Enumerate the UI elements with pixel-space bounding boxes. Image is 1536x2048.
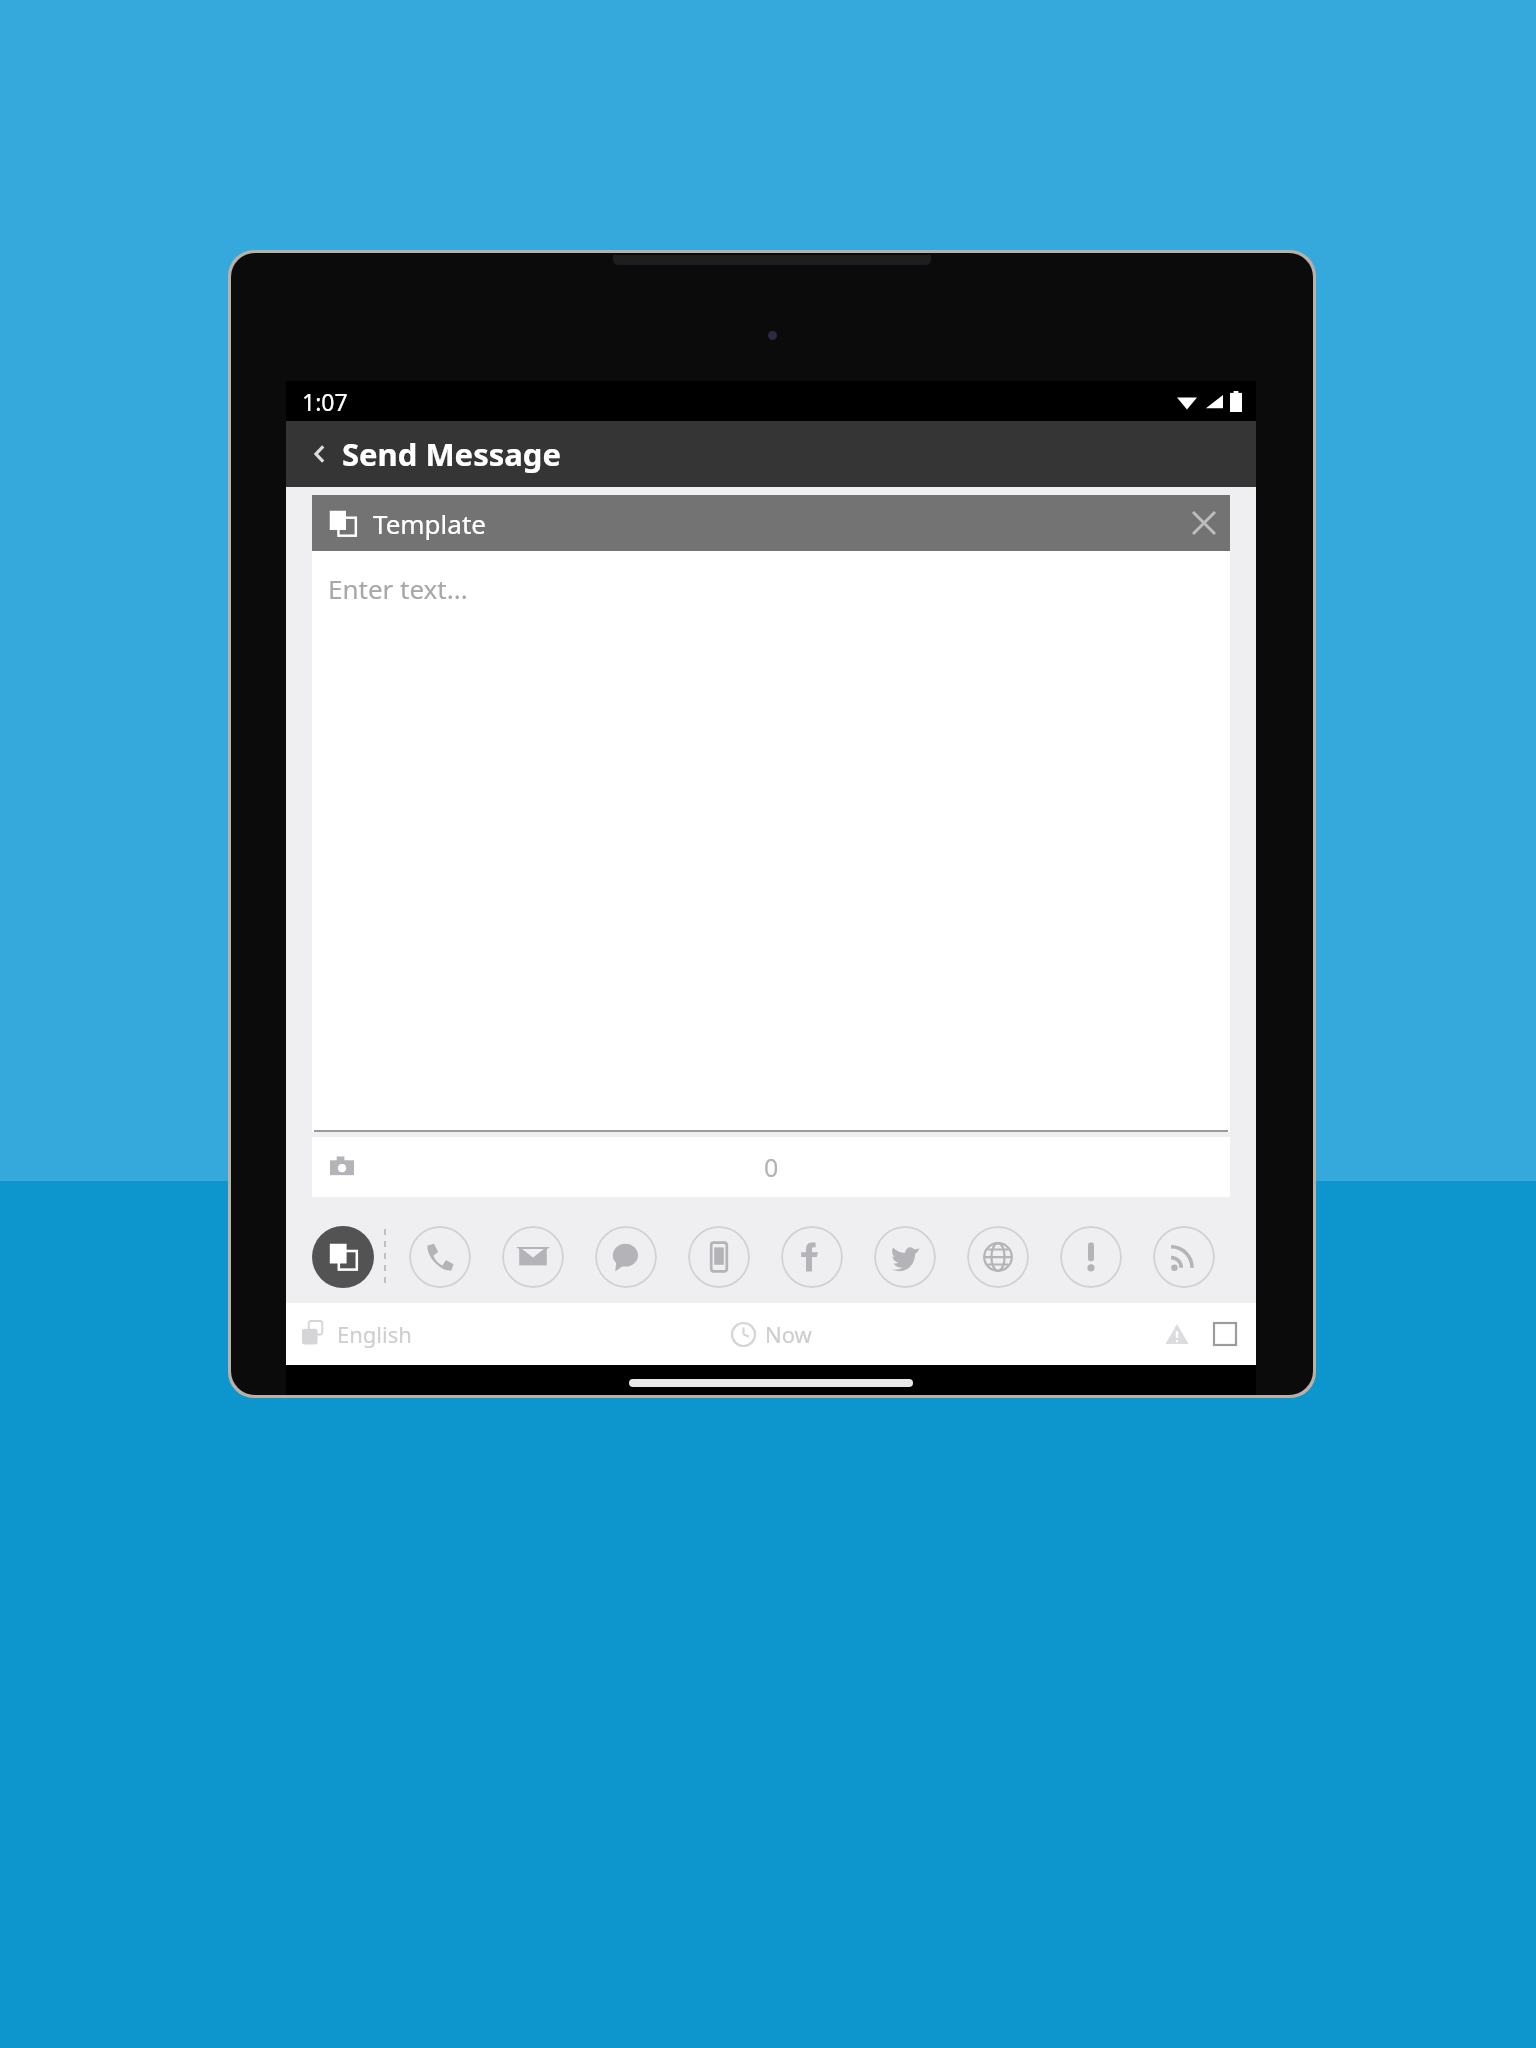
button[interactable]: Select: [1208, 1317, 1242, 1351]
button[interactable]: Web: [967, 1226, 1029, 1288]
button[interactable]: Close template: [1178, 497, 1230, 549]
button[interactable]: English: [302, 1319, 412, 1349]
staticText: 0: [764, 1150, 779, 1184]
button[interactable]: Attach photo: [320, 1145, 364, 1189]
staticText: Now: [765, 1319, 812, 1349]
button[interactable]: Warning: [1160, 1317, 1194, 1351]
staticText: English: [337, 1319, 412, 1349]
button[interactable]: Call: [409, 1226, 471, 1288]
staticText: Send Message: [342, 433, 561, 475]
staticText: Template: [373, 506, 486, 541]
button[interactable]: Email: [502, 1226, 564, 1288]
button[interactable]: Device: [688, 1226, 750, 1288]
button[interactable]: Now: [731, 1319, 812, 1349]
button[interactable]: Twitter: [874, 1226, 936, 1288]
button[interactable]: Facebook: [781, 1226, 843, 1288]
button[interactable]: Back: [298, 432, 342, 476]
button[interactable]: Feed: [1153, 1226, 1215, 1288]
button[interactable]: Alert: [1060, 1226, 1122, 1288]
staticText: 1:07: [302, 386, 348, 417]
staticText: Enter text...: [328, 571, 468, 606]
button[interactable]: Message: [595, 1226, 657, 1288]
button[interactable]: Template: [312, 1226, 374, 1288]
button[interactable]: Template: [312, 495, 1230, 551]
